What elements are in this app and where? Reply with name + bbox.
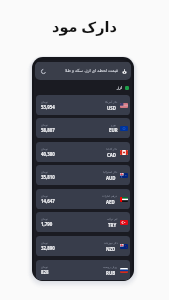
button[interactable]: تومان [36,118,130,138]
staticText: تومان [41,100,48,103]
staticText: دلار آمریکا [105,100,118,104]
button[interactable]: App logo [121,68,127,74]
button[interactable]: تومان [36,260,130,280]
staticText: 58,807 [41,127,55,133]
staticText: 14,647 [41,198,55,204]
staticText: 32,890 [41,245,55,251]
staticText: تومان [41,241,48,244]
button[interactable]: ارز [117,85,129,90]
button[interactable]: Dark mode [40,68,46,74]
staticText: CAD [107,152,117,158]
staticText: لیر ترکیه [107,217,118,221]
staticText: 53,954 [41,104,55,110]
staticText: تومان [41,217,48,220]
staticText: 40,380 [41,151,55,157]
staticText: تومان [41,170,48,173]
staticText: دلار کانادا [106,147,118,151]
staticText: تومان [41,265,48,268]
staticText: USD [107,105,116,111]
staticText: ارز [117,85,123,90]
staticText: 828 [41,269,49,275]
staticText: دلار استرالیا [103,170,118,174]
staticText: درهم امارات [102,194,118,198]
button[interactable]: تومان [36,95,130,115]
staticText: تومان [41,147,48,150]
button[interactable]: تومان [36,165,130,185]
staticText: قیمت لحظه ای ارز، سکه و طلا [65,68,118,74]
staticText: دلار نیوزیلند [104,241,118,245]
staticText: دارک مود [52,16,117,36]
staticText: تومان [41,194,48,197]
staticText: EUR [109,127,118,133]
button[interactable]: تومان [36,189,130,209]
staticText: 1,790 [41,221,53,227]
staticText: تومان [41,123,48,126]
staticText: AUD [106,175,116,181]
staticText: AED [106,199,115,205]
staticText: یورو [111,123,117,126]
staticText: NZD [106,246,116,252]
staticText: روبل روسیه [103,265,118,269]
button[interactable]: تومان [36,142,130,162]
button[interactable]: تومان [36,236,130,256]
staticText: TRY [108,222,117,228]
staticText: RUB [106,270,116,276]
button[interactable]: تومان [36,212,130,232]
staticText: 35,810 [41,174,55,180]
